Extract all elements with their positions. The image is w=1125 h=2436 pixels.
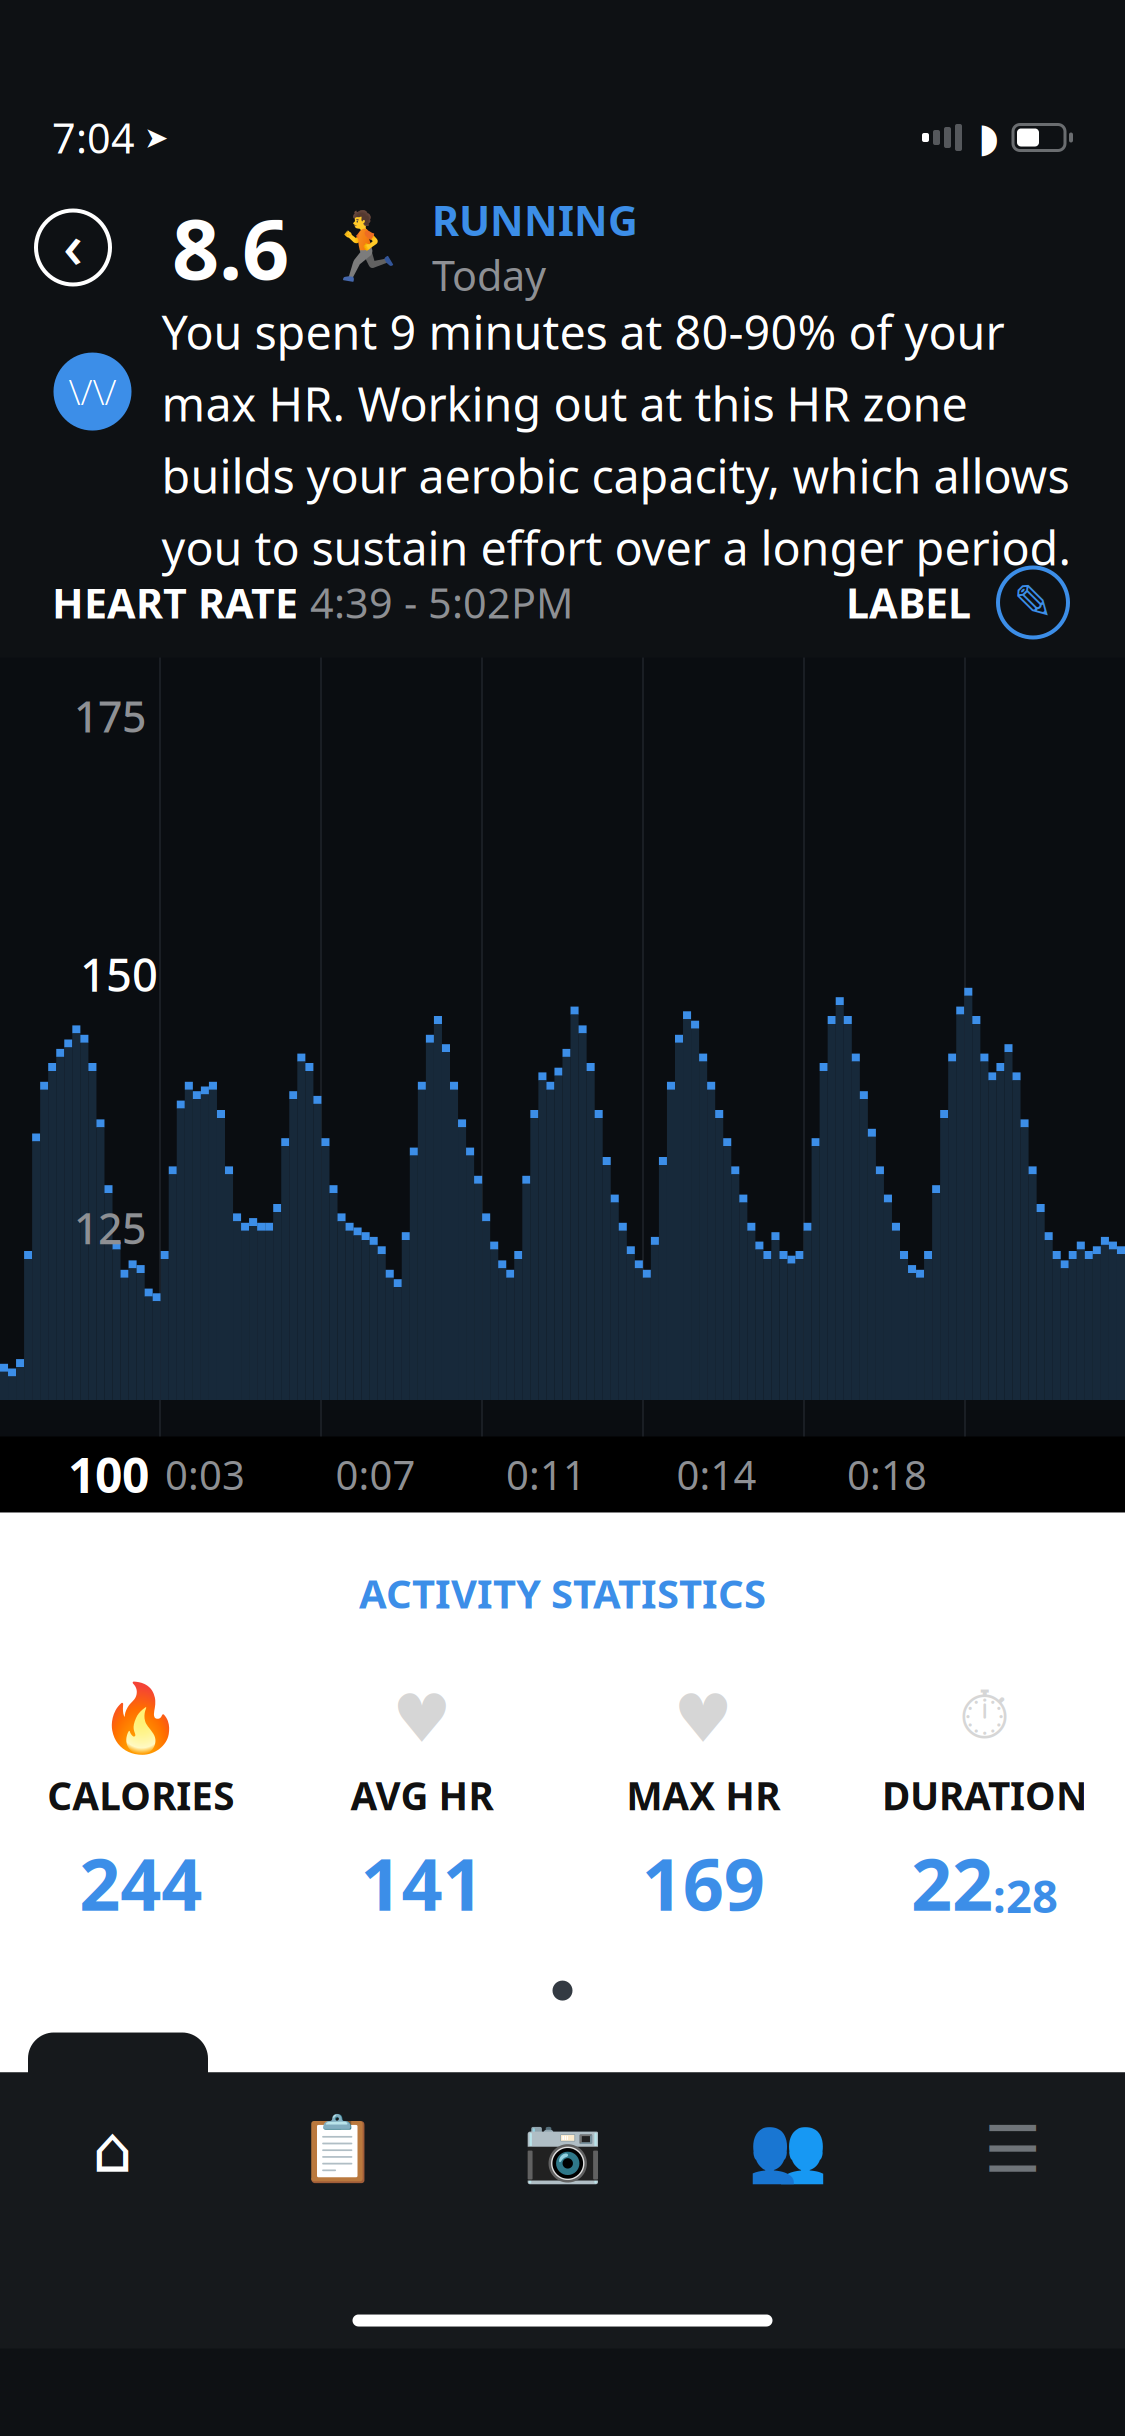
staticText: 👥 [747,2113,827,2186]
staticText: HEART RATE [52,575,298,630]
staticText: 🏃 [323,209,406,286]
staticText: 141 [360,1835,483,1931]
staticText: ⏱ [958,1686,1010,1751]
staticText: 0:07 [335,1448,415,1501]
staticText: ➤ [135,121,169,154]
staticText: Today [432,247,546,302]
staticText: RUNNING [432,193,638,247]
staticText: MAX HR [626,1770,780,1821]
staticText: 7:04 [52,110,135,165]
staticText: 175 [74,687,146,744]
staticText: 100 [68,1443,149,1506]
staticText: 4:39 - 5:02PM [310,575,573,630]
staticText: \/\/ [68,368,116,414]
staticText: 0:14 [676,1448,756,1501]
button[interactable]: Camera [450,2090,675,2208]
button[interactable]: Home [0,2090,225,2208]
staticText: CALORIES [47,1770,234,1821]
staticText: :28 [993,1865,1058,1926]
staticText: 150 [80,944,158,1004]
staticText: ♥ [392,1681,452,1756]
staticText: 📷 [522,2113,602,2186]
staticText: 0:03 [165,1448,245,1501]
staticText: 22 [911,1835,993,1931]
staticText: ACTIVITY STATISTICS [359,1566,766,1620]
button[interactable]: Community [675,2090,900,2208]
staticText: 🔥 [99,1680,182,1757]
staticText: LABEL [846,575,971,630]
staticText: ☰ [984,2113,1041,2186]
staticText: 125 [74,1199,146,1256]
staticText: ⌂ [92,2113,133,2186]
button[interactable]: Back [30,204,116,290]
staticText: ✎ [1013,575,1053,630]
staticText: 📋 [297,2113,377,2186]
staticText: 0:11 [506,1448,586,1501]
staticText: 8.6 [172,193,289,302]
button[interactable]: Workouts [225,2090,450,2208]
staticText: 0:18 [847,1448,927,1501]
staticText: 169 [642,1835,765,1931]
staticText: DURATION [882,1770,1087,1821]
staticText: AVG HR [350,1770,493,1821]
staticText: You spent 9 minutes at 80-90% of your ma… [161,301,1071,578]
button[interactable]: Edit label [993,562,1073,642]
staticText: 244 [79,1835,202,1931]
staticText: ♥ [673,1681,733,1756]
staticText: ‹ [63,204,83,285]
button[interactable]: More [900,2090,1125,2208]
staticText: ◗ [978,115,999,160]
